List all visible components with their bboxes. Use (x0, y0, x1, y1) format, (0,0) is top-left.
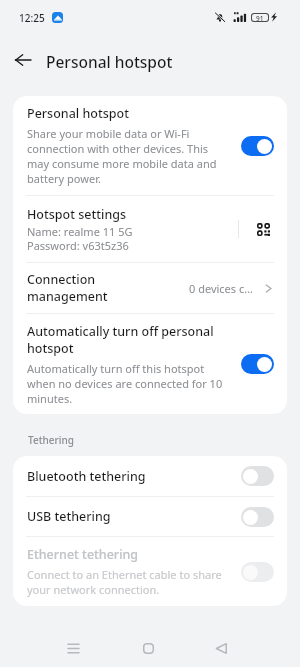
staticText: Ethernet tethering (27, 546, 139, 563)
button[interactable] (241, 562, 274, 582)
button[interactable] (241, 466, 274, 486)
staticText: USB tethering (27, 508, 111, 525)
staticText: Connect to an Ethernet cable to share yo… (27, 567, 231, 597)
button[interactable]: Automatically turn off personal hotspot (13, 314, 287, 414)
button[interactable]: Bluetooth tethering (13, 456, 287, 496)
staticText: 12:25 (19, 11, 45, 25)
staticText: Bluetooth tethering (27, 468, 146, 485)
button[interactable] (241, 507, 274, 527)
button[interactable]: USB tethering (13, 497, 287, 536)
button[interactable]: Connection management (13, 263, 287, 313)
staticText: 0 devices c... (189, 281, 254, 296)
staticText: Name: realme 11 5G Password: v63t5z36 (27, 224, 133, 253)
staticText: Automatically turn off this hotspot when… (27, 361, 227, 406)
button[interactable]: Back (7, 44, 39, 76)
staticText: Share your mobile data or Wi-Fi connecti… (27, 126, 227, 186)
button[interactable] (241, 354, 274, 374)
staticText: 91 (256, 14, 264, 21)
staticText: Personal hotspot (46, 51, 173, 72)
button[interactable]: Ethernet tethering (13, 537, 287, 606)
staticText: Hotspot settings (27, 206, 127, 223)
staticText: Personal hotspot (27, 105, 129, 122)
button[interactable]: Hotspot settings (13, 196, 287, 262)
button[interactable]: Home (128, 628, 168, 667)
staticText: Tethering (28, 433, 74, 447)
staticText: Connection management (27, 271, 122, 305)
button[interactable]: Back (201, 628, 241, 667)
button[interactable]: Personal hotspot (13, 96, 287, 195)
button[interactable] (241, 136, 274, 156)
button[interactable]: Recent apps (53, 628, 93, 667)
button[interactable]: Show QR code (250, 216, 276, 242)
staticText: Automatically turn off personal hotspot (27, 323, 227, 356)
